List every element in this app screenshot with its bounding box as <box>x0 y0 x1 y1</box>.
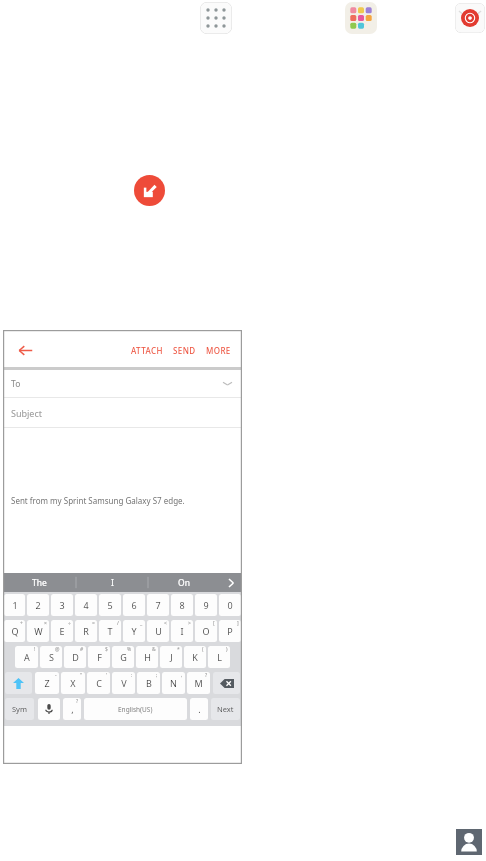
staticText: Sym <box>12 704 27 714</box>
button[interactable]: ATTACH <box>126 339 168 362</box>
staticText: - <box>55 672 57 679</box>
button[interactable]: O <box>195 620 217 642</box>
button[interactable]: MORE <box>201 339 236 362</box>
button[interactable]: I <box>76 573 148 592</box>
staticText: * <box>177 646 180 653</box>
button[interactable]: C <box>87 672 110 694</box>
staticText: MORE <box>206 345 231 356</box>
staticText: # <box>80 646 84 653</box>
staticText: × <box>44 620 47 627</box>
button[interactable]: U <box>147 620 169 642</box>
button[interactable]: R <box>75 620 97 642</box>
button[interactable]: Y <box>123 620 145 642</box>
button[interactable]: M <box>187 672 210 694</box>
button[interactable]: S <box>40 646 62 668</box>
button[interactable]: Backspace <box>213 672 240 694</box>
button[interactable]: 7 <box>147 594 169 616</box>
button[interactable]: Sym <box>5 698 34 720</box>
staticText: On <box>178 577 190 589</box>
staticText: ! <box>34 646 36 653</box>
staticText: Subject <box>11 407 43 419</box>
button[interactable]: Compose <box>134 175 165 206</box>
staticText: F <box>97 651 102 663</box>
button[interactable]: 8 <box>171 594 193 616</box>
staticText: The <box>32 577 47 589</box>
button[interactable]: D <box>64 646 86 668</box>
staticText: R <box>83 625 89 637</box>
staticText: ? <box>76 698 79 705</box>
staticText: 5 <box>107 599 113 611</box>
staticText: 4 <box>83 599 89 611</box>
button[interactable]: 1 <box>4 594 25 616</box>
button[interactable]: On <box>148 573 220 592</box>
button[interactable]: Back <box>10 330 40 370</box>
staticText: ATTACH <box>131 345 163 356</box>
staticText: K <box>192 651 198 663</box>
button[interactable]: . <box>190 698 208 720</box>
button[interactable]: Next <box>211 698 240 720</box>
button[interactable]: Voice input <box>38 698 60 720</box>
button[interactable]: , <box>63 698 81 720</box>
button[interactable]: More suggestions <box>220 573 242 592</box>
staticText: @ <box>55 646 60 653</box>
button[interactable]: X <box>61 672 85 694</box>
staticText: I <box>180 625 184 637</box>
staticText: To <box>11 378 21 390</box>
button[interactable]: P <box>219 620 241 642</box>
staticText: S <box>49 651 54 663</box>
button[interactable]: 5 <box>99 594 121 616</box>
button[interactable]: J <box>160 646 182 668</box>
button[interactable]: 3 <box>51 594 73 616</box>
button[interactable]: H <box>136 646 158 668</box>
staticText: H <box>144 651 151 663</box>
staticText: Y <box>131 625 137 637</box>
button[interactable]: I <box>171 620 193 642</box>
button[interactable]: 0 <box>219 594 241 616</box>
button[interactable]: Email <box>455 3 485 33</box>
button[interactable]: W <box>27 620 49 642</box>
button[interactable]: Subject <box>3 398 242 427</box>
staticText: , <box>71 703 74 715</box>
button[interactable]: F <box>88 646 110 668</box>
staticText: > <box>188 620 191 627</box>
staticText: 9 <box>203 599 209 611</box>
button[interactable]: A <box>15 646 38 668</box>
button[interactable]: Folder <box>345 2 377 34</box>
button[interactable]: Z <box>35 672 59 694</box>
staticText: 7 <box>155 599 161 611</box>
staticText: 6 <box>131 599 137 611</box>
staticText: . <box>198 703 201 715</box>
staticText: 8 <box>179 599 185 611</box>
button[interactable]: SEND <box>168 339 201 362</box>
button[interactable]: Sent from my Sprint Samsung Galaxy S7 ed… <box>3 428 242 573</box>
staticText: M <box>194 677 203 689</box>
staticText: 1 <box>12 599 18 611</box>
staticText: < <box>164 620 167 627</box>
button[interactable]: L <box>208 646 230 668</box>
button[interactable]: Contact <box>456 829 482 855</box>
staticText: X <box>70 677 76 689</box>
button[interactable]: English(US) <box>84 698 187 720</box>
button[interactable]: To <box>3 370 242 397</box>
button[interactable]: The <box>3 573 76 592</box>
button[interactable]: B <box>137 672 160 694</box>
staticText: ; <box>156 672 158 679</box>
button[interactable]: 9 <box>195 594 217 616</box>
button[interactable]: T <box>99 620 121 642</box>
staticText: Q <box>11 625 19 637</box>
button[interactable]: N <box>162 672 185 694</box>
button[interactable]: Q <box>4 620 25 642</box>
button[interactable]: V <box>112 672 135 694</box>
button[interactable]: E <box>51 620 73 642</box>
staticText: D <box>72 651 79 663</box>
button[interactable]: Apps <box>200 2 232 34</box>
staticText: T <box>107 625 113 637</box>
staticText: ? <box>205 672 208 679</box>
button[interactable]: G <box>112 646 134 668</box>
button[interactable]: 6 <box>123 594 145 616</box>
button[interactable]: Shift <box>5 672 32 694</box>
staticText: ) <box>226 646 228 653</box>
button[interactable]: 2 <box>27 594 49 616</box>
button[interactable]: 4 <box>75 594 97 616</box>
button[interactable]: K <box>184 646 206 668</box>
